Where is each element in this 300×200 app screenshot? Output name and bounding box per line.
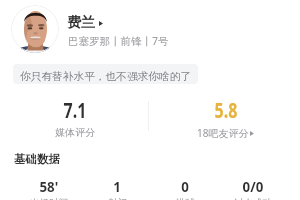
staticText: 出场时间 xyxy=(30,197,68,200)
button[interactable]: 费兰 xyxy=(67,14,103,32)
button[interactable]: 0/0 xyxy=(219,177,287,196)
staticText: 过人成功 xyxy=(234,197,272,200)
staticText: 58' xyxy=(39,177,58,196)
staticText: 你只有替补水平，也不强求你啥的了 xyxy=(20,70,191,83)
staticText: 1 xyxy=(113,177,122,196)
button[interactable]: 球员头像 xyxy=(11,5,59,53)
staticText: 5.8 xyxy=(215,96,237,125)
staticText: 7.1 xyxy=(64,96,86,125)
staticText: 巴塞罗那丨前锋丨7号 xyxy=(68,34,169,48)
staticText: 媒体评分 xyxy=(55,126,95,139)
button[interactable]: 你只有替补水平，也不强求你啥的了 xyxy=(13,64,198,84)
staticText: 进球 xyxy=(176,197,195,200)
button[interactable]: 5.8 xyxy=(150,96,300,140)
staticText: 费兰 xyxy=(67,14,95,32)
button[interactable]: 58' xyxy=(14,177,83,196)
staticText: 0 xyxy=(181,177,190,196)
button[interactable]: 1 xyxy=(83,177,151,196)
staticText: 射门 xyxy=(108,197,127,200)
staticText: 18吧友评分 xyxy=(197,126,249,140)
staticText: 0/0 xyxy=(243,177,263,196)
button[interactable]: 7.1 xyxy=(0,96,150,139)
staticText: 基础数据 xyxy=(14,152,60,166)
button[interactable]: 0 xyxy=(151,177,219,196)
